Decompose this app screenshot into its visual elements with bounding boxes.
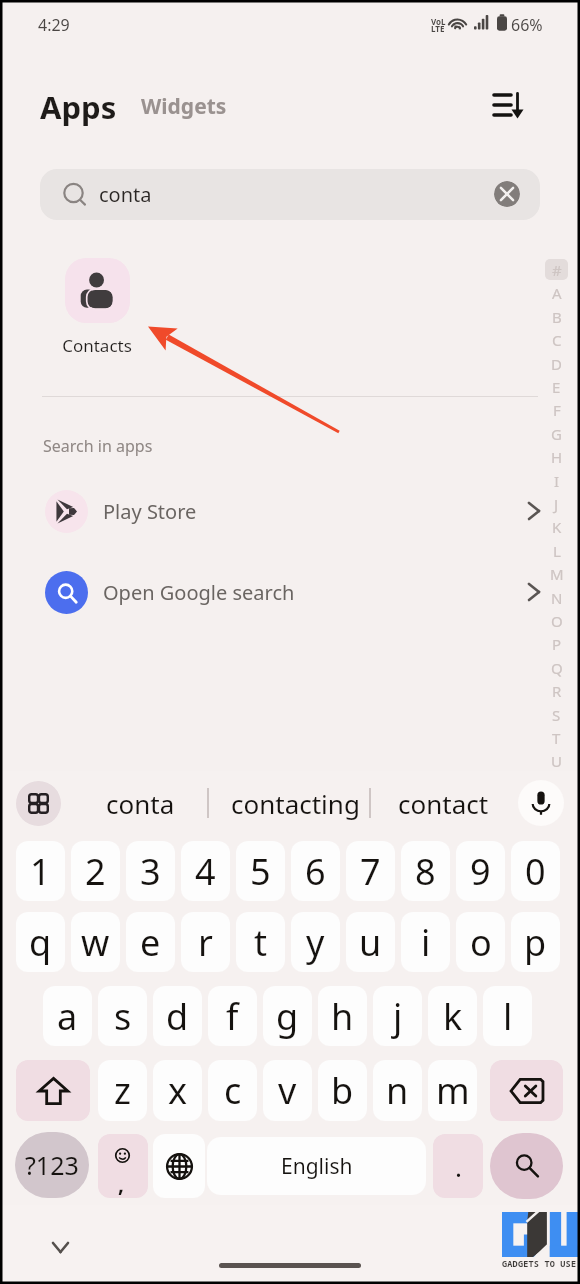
- button[interactable]: .: [433, 1134, 483, 1198]
- button[interactable]: H: [545, 446, 568, 467]
- staticText: conta: [106, 786, 175, 821]
- button[interactable]: g: [263, 986, 312, 1046]
- staticText: d: [166, 992, 189, 1041]
- button[interactable]: 9: [456, 841, 505, 901]
- button[interactable]: Emoji: [98, 1134, 148, 1198]
- button[interactable]: y: [291, 912, 340, 972]
- button[interactable]: L: [545, 540, 568, 561]
- button[interactable]: Backspace: [490, 1060, 563, 1121]
- button[interactable]: J: [545, 493, 568, 514]
- button[interactable]: I: [545, 470, 568, 491]
- button[interactable]: 3: [126, 841, 175, 901]
- staticText: i: [421, 918, 431, 967]
- staticText: 2: [85, 847, 106, 896]
- staticText: e: [140, 918, 161, 967]
- button[interactable]: conta: [40, 169, 540, 220]
- button[interactable]: b: [318, 1060, 367, 1121]
- button[interactable]: x: [153, 1060, 202, 1121]
- button[interactable]: e: [126, 912, 175, 972]
- button[interactable]: m: [428, 1060, 477, 1121]
- button[interactable]: B: [545, 306, 568, 327]
- button[interactable]: w: [71, 912, 120, 972]
- staticText: LTE: [431, 23, 445, 34]
- button[interactable]: F: [545, 399, 568, 420]
- button[interactable]: 8: [401, 841, 450, 901]
- button[interactable]: Clear search: [494, 181, 520, 207]
- button[interactable]: R: [545, 680, 568, 701]
- button[interactable]: Language: [153, 1134, 205, 1198]
- staticText: K: [552, 517, 562, 537]
- button[interactable]: S: [545, 704, 568, 725]
- button[interactable]: d: [153, 986, 202, 1046]
- button[interactable]: contacting: [231, 782, 360, 824]
- button[interactable]: Search: [490, 1133, 563, 1199]
- button[interactable]: s: [98, 986, 147, 1046]
- button[interactable]: N: [545, 587, 568, 608]
- button[interactable]: Q: [545, 657, 568, 678]
- button[interactable]: G: [545, 423, 568, 444]
- button[interactable]: h: [318, 986, 367, 1046]
- button[interactable]: z: [98, 1060, 147, 1121]
- button[interactable]: Play Store: [30, 483, 550, 539]
- button[interactable]: a: [43, 986, 92, 1046]
- staticText: A: [552, 283, 562, 303]
- button[interactable]: l: [483, 986, 532, 1046]
- button[interactable]: T: [545, 727, 568, 748]
- button[interactable]: U: [545, 750, 568, 771]
- button[interactable]: Apps: [40, 86, 117, 128]
- button[interactable]: Contacts: [52, 258, 142, 357]
- button[interactable]: 4: [181, 841, 230, 901]
- button[interactable]: 2: [71, 841, 120, 901]
- button[interactable]: #: [545, 259, 568, 280]
- button[interactable]: English: [207, 1137, 426, 1195]
- button[interactable]: k: [428, 986, 477, 1046]
- button[interactable]: 5: [236, 841, 285, 901]
- button[interactable]: c: [208, 1060, 257, 1121]
- staticText: 3: [140, 847, 161, 896]
- button[interactable]: u: [346, 912, 395, 972]
- button[interactable]: i: [401, 912, 450, 972]
- staticText: w: [81, 918, 110, 967]
- button[interactable]: 7: [346, 841, 395, 901]
- button[interactable]: Hide keyboard: [44, 1231, 76, 1263]
- button[interactable]: j: [373, 986, 422, 1046]
- button[interactable]: P: [545, 633, 568, 654]
- button[interactable]: A: [545, 282, 568, 303]
- button[interactable]: M: [545, 563, 568, 584]
- button[interactable]: q: [16, 912, 65, 972]
- button[interactable]: conta: [106, 782, 175, 824]
- button[interactable]: 1: [16, 841, 65, 901]
- button[interactable]: r: [181, 912, 230, 972]
- button[interactable]: Shift: [16, 1060, 90, 1121]
- button[interactable]: Keyboard options: [16, 781, 61, 826]
- staticText: n: [386, 1066, 409, 1115]
- staticText: Apps: [40, 86, 117, 128]
- button[interactable]: Voice input: [518, 780, 564, 826]
- staticText: Search in apps: [43, 435, 153, 457]
- button[interactable]: K: [545, 516, 568, 537]
- button[interactable]: 0: [511, 841, 560, 901]
- staticText: t: [254, 918, 267, 967]
- staticText: k: [443, 992, 463, 1041]
- button[interactable]: Open Google search: [30, 564, 550, 620]
- staticText: 1: [30, 847, 51, 896]
- staticText: H: [551, 447, 563, 467]
- staticText: s: [114, 992, 132, 1041]
- button[interactable]: Widgets: [141, 92, 227, 121]
- button[interactable]: 6: [291, 841, 340, 901]
- button[interactable]: E: [545, 376, 568, 397]
- button[interactable]: v: [263, 1060, 312, 1121]
- button[interactable]: ?123: [15, 1132, 89, 1198]
- button[interactable]: o: [456, 912, 505, 972]
- button[interactable]: contact: [398, 782, 489, 824]
- button[interactable]: C: [545, 329, 568, 350]
- button[interactable]: n: [373, 1060, 422, 1121]
- button[interactable]: f: [208, 986, 257, 1046]
- button[interactable]: t: [236, 912, 285, 972]
- staticText: a: [57, 992, 78, 1041]
- button[interactable]: p: [511, 912, 560, 972]
- button[interactable]: O: [545, 610, 568, 631]
- button[interactable]: D: [545, 353, 568, 374]
- button[interactable]: Sort: [484, 82, 532, 130]
- staticText: m: [436, 1066, 470, 1115]
